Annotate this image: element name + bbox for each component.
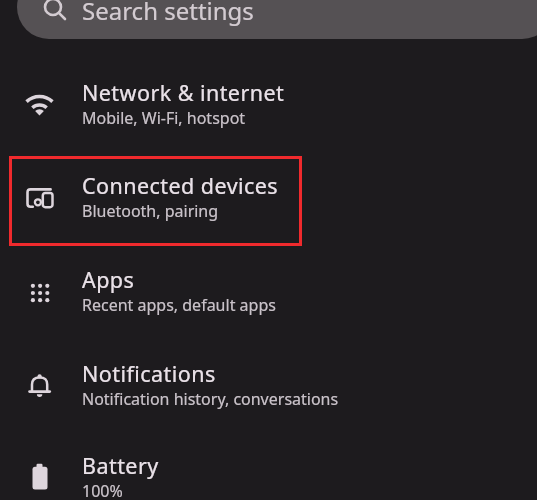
staticText: Notification history, conversations	[82, 388, 339, 410]
staticText: Recent apps, default apps	[82, 294, 276, 316]
button[interactable]: Apps	[0, 246, 537, 339]
staticText: Mobile, Wi-Fi, hotspot	[82, 107, 246, 129]
button[interactable]: Battery	[0, 432, 537, 500]
button[interactable]: Network & internet	[0, 59, 537, 152]
staticText: Connected devices	[82, 171, 279, 200]
staticText: Battery	[82, 451, 159, 480]
button[interactable]: Search settings	[17, 0, 537, 39]
button[interactable]: Connected devices	[0, 152, 537, 245]
staticText: Network & internet	[82, 78, 285, 107]
staticText: Notifications	[82, 359, 216, 388]
staticText: 100%	[82, 480, 123, 500]
button[interactable]: Notifications	[0, 340, 537, 433]
staticText: Bluetooth, pairing	[82, 200, 219, 222]
staticText: Search settings	[82, 0, 254, 27]
staticText: Apps	[82, 265, 135, 294]
